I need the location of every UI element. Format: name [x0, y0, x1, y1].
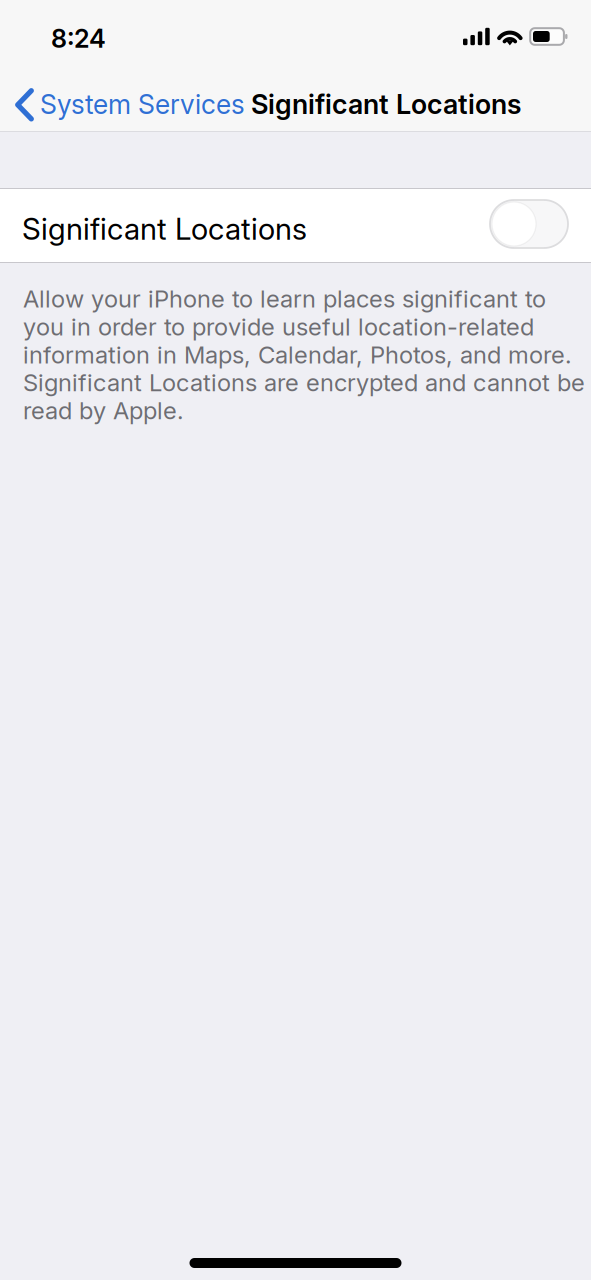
staticText: 8:24 [51, 23, 106, 54]
staticText: Allow your iPhone to learn places signif… [23, 284, 585, 425]
button[interactable]: System Services [0, 70, 251, 132]
staticText: Significant Locations [22, 211, 307, 247]
staticText: Significant Locations [251, 88, 521, 120]
staticText: System Services [40, 88, 245, 120]
button[interactable]: Significant Locations [0, 188, 591, 263]
